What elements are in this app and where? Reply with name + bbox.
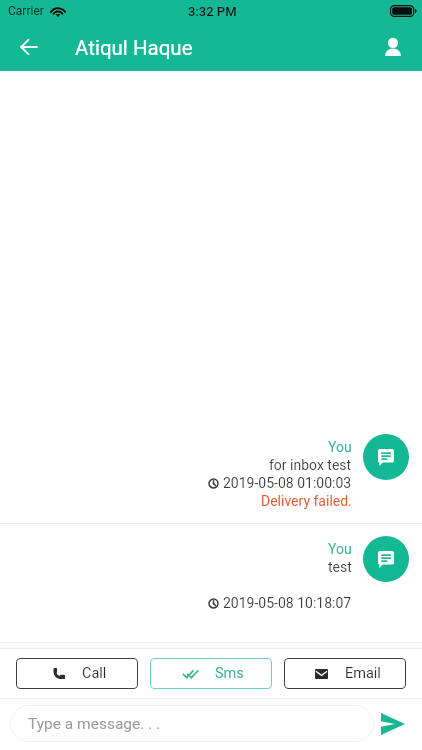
button[interactable]: Type a message. . . (10, 705, 374, 742)
staticText: for inbox test (269, 457, 352, 473)
button[interactable]: You (0, 418, 422, 523)
button[interactable]: Email (284, 658, 406, 689)
button[interactable]: Contact details (373, 28, 413, 68)
staticText: Call (82, 665, 107, 682)
staticText: Carrier (8, 4, 44, 18)
button[interactable]: Back (9, 28, 49, 68)
button[interactable]: Call (16, 658, 138, 689)
staticText: 2019-05-08 01:00:03 (223, 475, 352, 491)
staticText: You (328, 541, 352, 557)
staticText: Atiqul Haque (75, 36, 193, 60)
staticText: Sms (215, 665, 244, 682)
button[interactable]: You (0, 524, 422, 642)
button[interactable]: Sms (150, 658, 272, 689)
staticText: test (328, 559, 352, 575)
staticText: Type a message. . . (28, 715, 161, 733)
staticText: Email (345, 665, 381, 682)
staticText: Delivery failed. (261, 493, 352, 509)
staticText: 3:32 PM (188, 4, 237, 19)
staticText: You (328, 439, 352, 455)
button[interactable]: Send (374, 705, 412, 742)
staticText: 2019-05-08 10:18:07 (223, 595, 352, 611)
